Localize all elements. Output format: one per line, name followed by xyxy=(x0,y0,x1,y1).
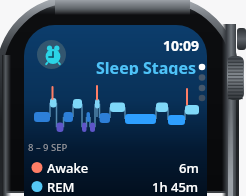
staticText: REM xyxy=(47,178,75,196)
staticText: Awake xyxy=(47,159,89,177)
staticText: 1h 45m xyxy=(152,178,199,196)
staticText: 8 – 9 SEP xyxy=(28,141,68,154)
button[interactable]: Awake xyxy=(28,158,199,177)
staticText: 6m xyxy=(179,159,199,177)
staticText: 10:09 xyxy=(163,36,199,51)
button[interactable] xyxy=(36,39,66,69)
button[interactable] xyxy=(30,82,207,134)
button[interactable]: REM xyxy=(28,177,199,196)
button[interactable]: Sleep Stages xyxy=(60,57,197,75)
staticText: Sleep Stages xyxy=(96,57,197,75)
